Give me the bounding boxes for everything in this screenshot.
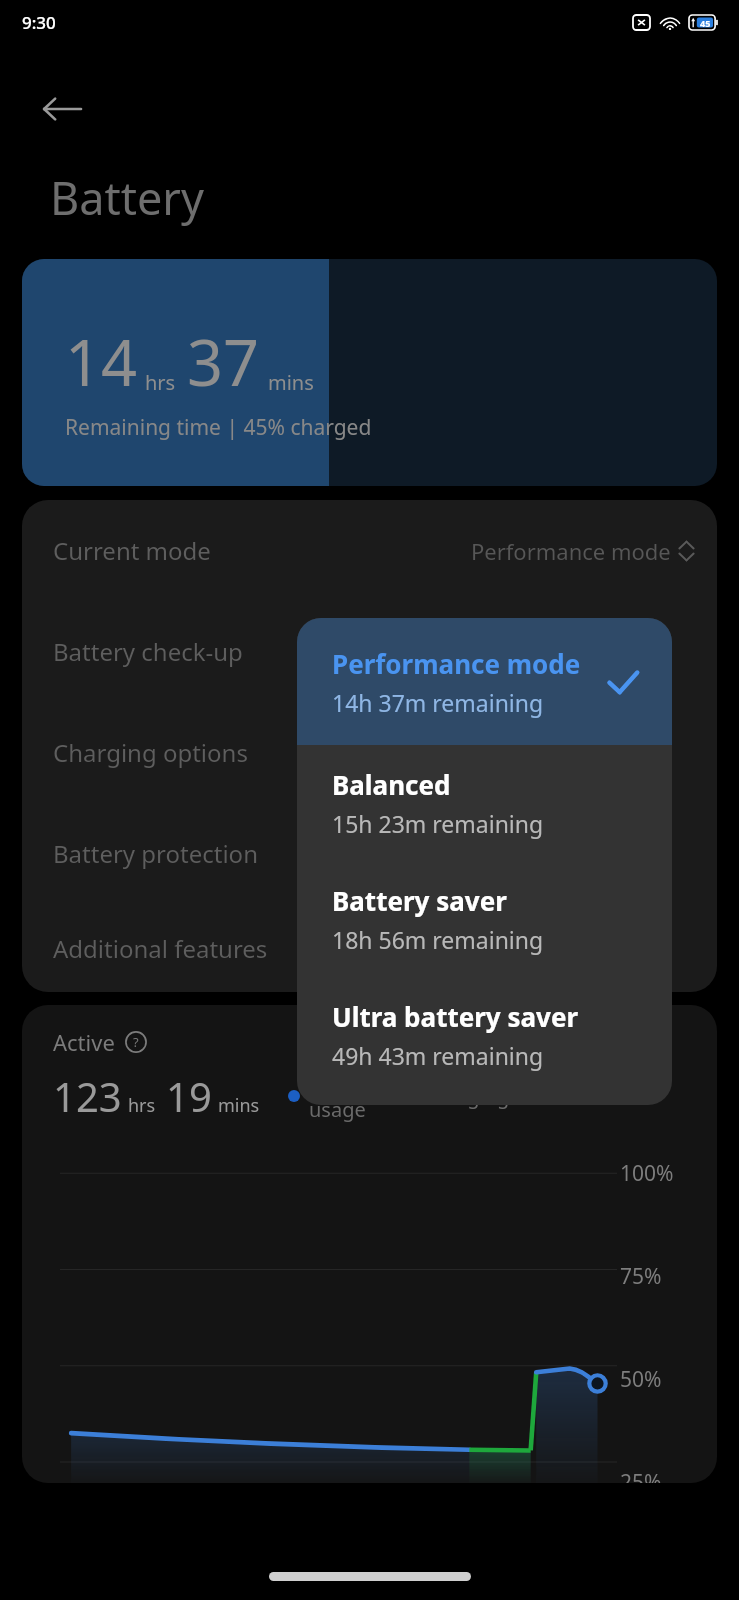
button[interactable]: Charging options [22,702,717,803]
staticText: 19 [166,1069,212,1123]
staticText: Battery [50,167,204,228]
staticText: Charging options [53,736,248,769]
staticText: mins [218,1093,260,1118]
staticText: Charging [423,1083,510,1110]
staticText: 9:30 [22,11,56,34]
staticText: 37 [187,319,260,405]
staticText: 15h 23m remaining [332,808,544,839]
button[interactable]: Back [36,83,88,135]
staticText: Battery usage [309,1069,378,1123]
staticText: Active [53,1027,115,1057]
staticText: 100% [620,1159,674,1188]
staticText: hrs [128,1093,156,1118]
staticText: 18h 56m remaining [332,924,544,955]
staticText: Current mode [53,534,211,567]
button[interactable]: Battery check-up [22,601,717,702]
button[interactable]: Battery saver [297,861,672,977]
staticText: Remaining time | 45% charged [65,413,372,442]
staticText: Battery check-up [53,635,243,668]
staticText: Performance mode [332,646,581,681]
staticText: 75% [620,1262,662,1291]
staticText: hrs [145,369,176,396]
staticText: 50% [620,1365,662,1394]
staticText: 123 [53,1069,122,1123]
staticText: mins [268,369,314,396]
button[interactable]: Performance mode [297,618,672,745]
staticText: 49h 43m remaining [332,1040,544,1071]
button[interactable]: Help [124,1030,148,1054]
staticText: Ultra battery saver [332,999,579,1034]
button[interactable]: Current mode [22,500,717,601]
staticText: Battery saver [332,883,507,918]
button[interactable]: Balanced [297,745,672,861]
staticText: Additional features [53,932,268,965]
staticText: 25% [620,1468,662,1483]
staticText: 14h 37m remaining [332,687,544,718]
staticText: ? [133,1033,139,1051]
staticText: Balanced [332,767,451,802]
button[interactable]: Ultra battery saver [297,977,672,1093]
staticText: 45 [700,17,711,29]
button[interactable]: Additional features [22,904,717,992]
staticText: 14 [65,319,138,405]
staticText: Battery protection [53,837,258,870]
button[interactable]: 14 [22,259,717,486]
button[interactable]: Battery protection [22,803,717,904]
staticText: Performance mode [471,536,671,566]
